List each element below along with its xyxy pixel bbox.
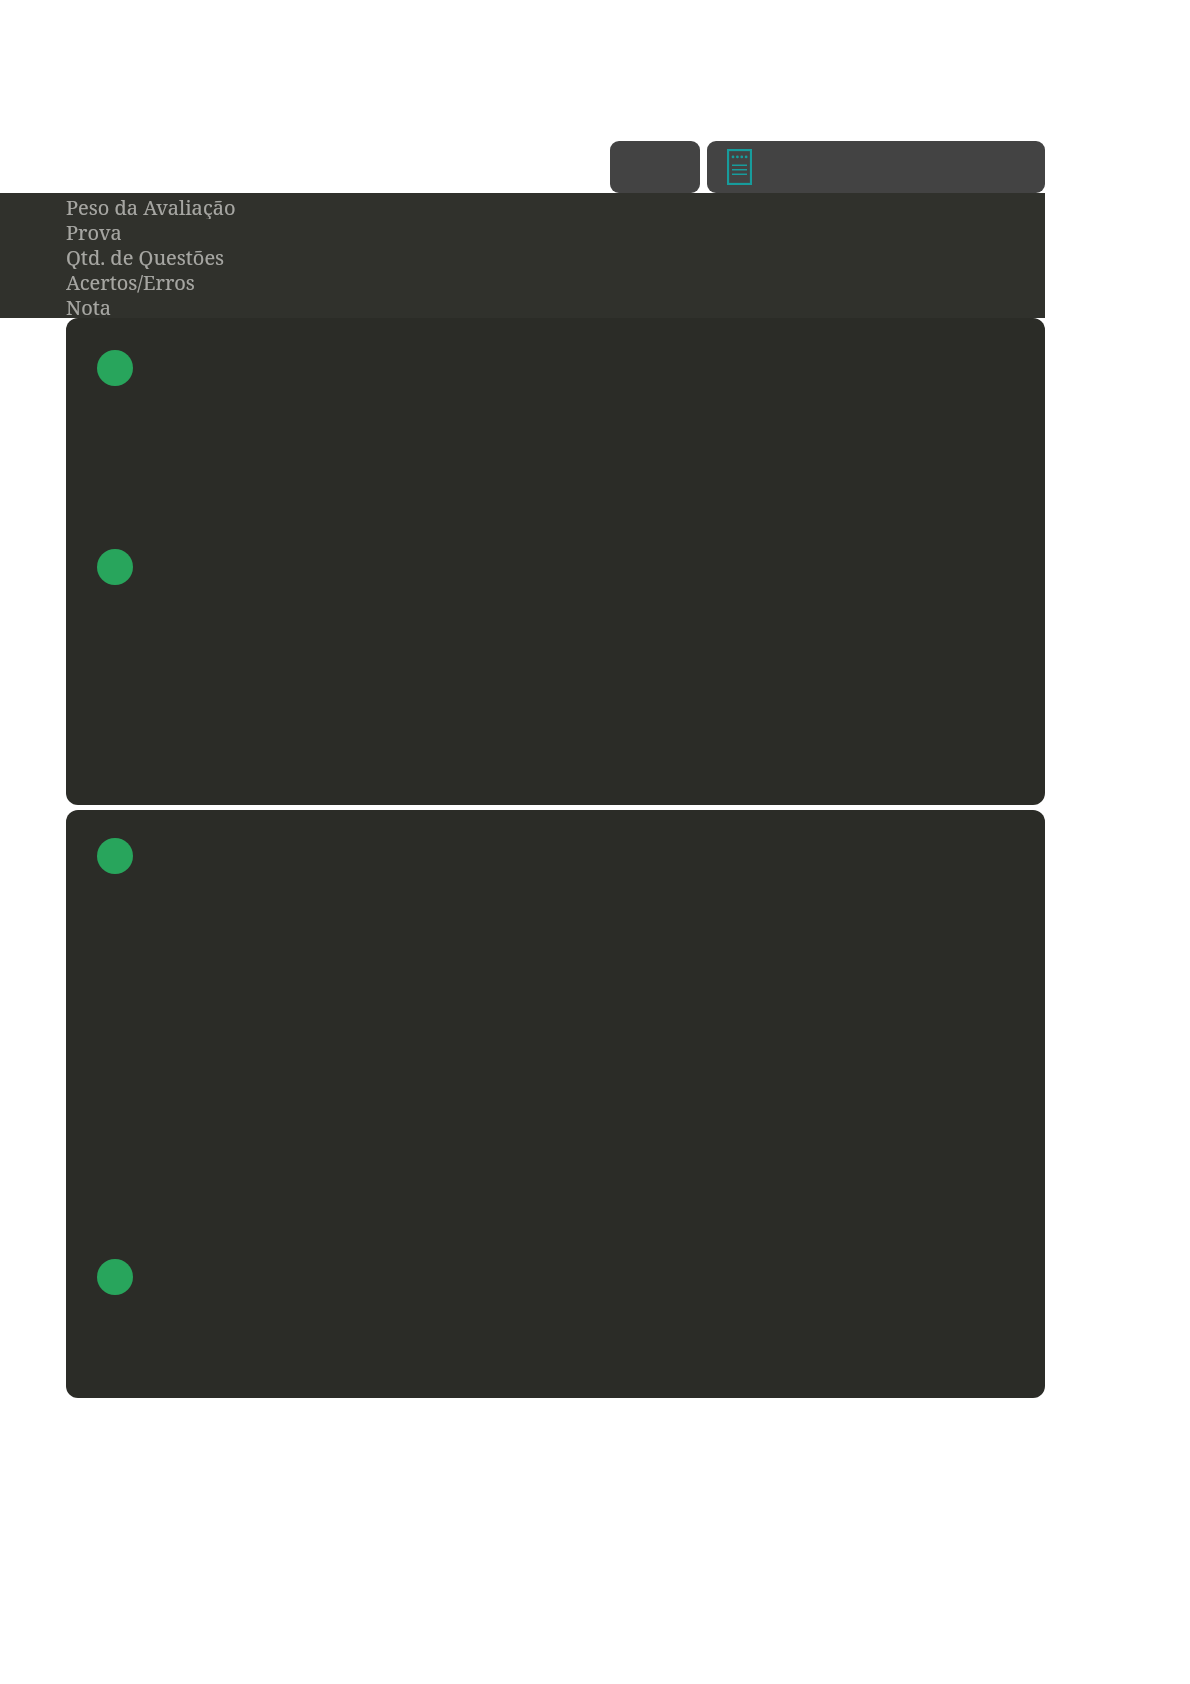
button[interactable] bbox=[66, 318, 1045, 805]
button[interactable]: Prova bbox=[707, 141, 1045, 193]
button[interactable]: Menu bbox=[610, 141, 700, 193]
staticText: Nota bbox=[66, 294, 112, 318]
staticText: Peso da Avaliação bbox=[66, 194, 236, 219]
staticText: Prova bbox=[66, 219, 122, 244]
staticText: Qtd. de Questões bbox=[66, 244, 225, 269]
staticText: Acertos/Erros bbox=[66, 269, 195, 294]
button[interactable] bbox=[66, 810, 1045, 1398]
